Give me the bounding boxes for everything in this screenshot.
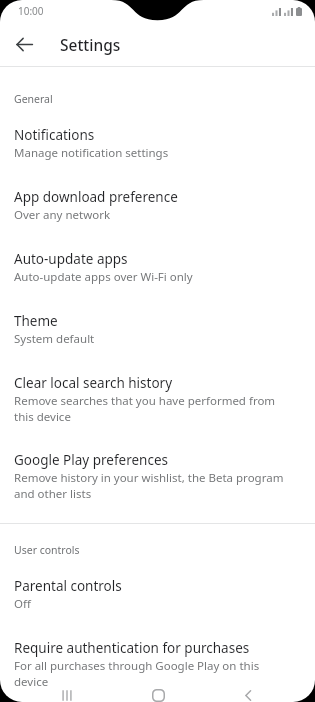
- button[interactable]: Auto-update apps: [0, 223, 315, 285]
- staticText: Clear local search history: [14, 374, 173, 392]
- staticText: Remove searches that you have performed …: [14, 393, 293, 424]
- staticText: Over any network: [14, 207, 111, 223]
- staticText: App download preference: [14, 188, 178, 206]
- staticText: Theme: [14, 312, 58, 330]
- staticText: Parental controls: [14, 577, 122, 595]
- button[interactable]: Recents: [49, 689, 85, 702]
- button[interactable]: Home: [140, 689, 176, 702]
- staticText: General: [14, 92, 53, 106]
- button[interactable]: Back: [230, 689, 266, 702]
- staticText: Manage notification settings: [14, 145, 169, 161]
- button[interactable]: Google Play preferences: [0, 424, 315, 501]
- button[interactable]: Theme: [0, 285, 315, 347]
- staticText: 10:00: [18, 4, 44, 18]
- button[interactable]: Clear local search history: [0, 347, 315, 424]
- staticText: Google Play preferences: [14, 451, 168, 469]
- staticText: Settings: [60, 34, 121, 55]
- button[interactable]: Notifications: [0, 106, 315, 161]
- staticText: Require authentication for purchases: [14, 639, 250, 657]
- staticText: Off: [14, 596, 31, 612]
- button[interactable]: Back: [8, 28, 40, 60]
- staticText: System default: [14, 331, 95, 347]
- staticText: User controls: [14, 543, 80, 557]
- button[interactable]: Parental controls: [0, 557, 315, 612]
- staticText: Auto-update apps: [14, 250, 128, 268]
- button[interactable]: App download preference: [0, 161, 315, 223]
- staticText: Notifications: [14, 126, 95, 144]
- button[interactable]: Require authentication for purchases: [0, 612, 315, 689]
- staticText: Remove history in your wishlist, the Bet…: [14, 470, 293, 501]
- staticText: Auto-update apps over Wi-Fi only: [14, 269, 193, 285]
- staticText: For all purchases through Google Play on…: [14, 658, 293, 689]
